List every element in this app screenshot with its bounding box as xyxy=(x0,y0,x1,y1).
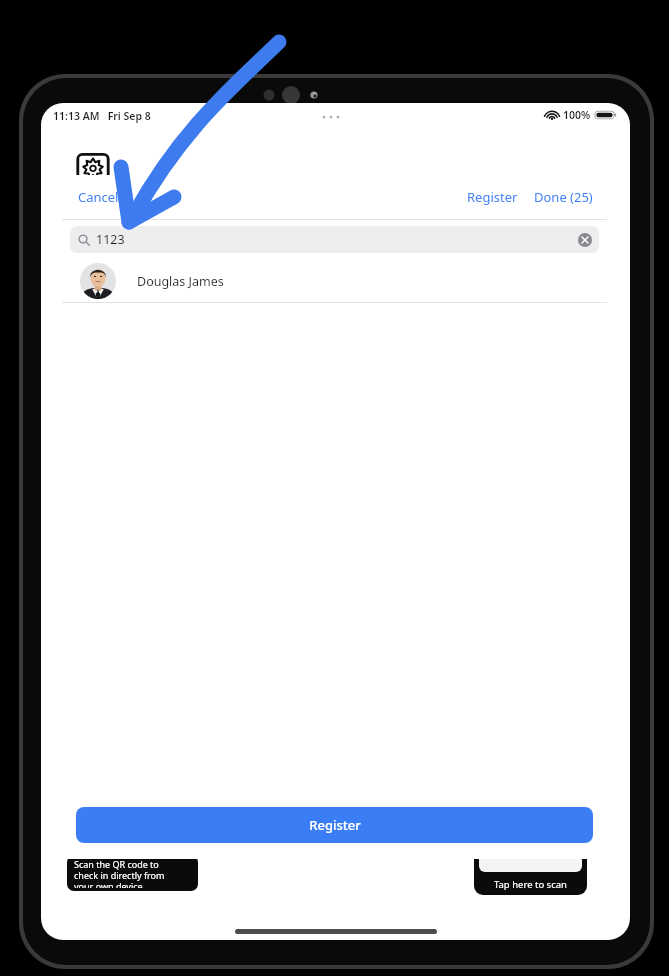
button[interactable]: Cancel xyxy=(68,182,129,212)
button[interactable]: Done (25) xyxy=(526,182,601,212)
button[interactable]: Clear search xyxy=(578,233,592,247)
staticText: Register xyxy=(467,188,518,206)
staticText: Done (25) xyxy=(534,188,593,206)
staticText: 100% xyxy=(563,108,591,122)
staticText: Tap here to scan xyxy=(494,878,567,891)
button[interactable]: Register xyxy=(459,182,526,212)
button[interactable]: Tap here to scan xyxy=(474,843,587,895)
staticText: Scan the QR code to check in directly fr… xyxy=(74,858,165,888)
staticText: Douglas James xyxy=(137,273,224,290)
button[interactable]: App logo xyxy=(74,149,112,187)
button[interactable]: 1123 xyxy=(70,226,599,253)
staticText: 11:13 AM Fri Sep 8 xyxy=(53,109,151,123)
staticText: Cancel xyxy=(78,188,119,206)
button[interactable]: Register xyxy=(76,807,593,843)
staticText: Register xyxy=(309,816,361,834)
button[interactable]: Douglas James xyxy=(62,259,607,303)
staticText: 1123 xyxy=(96,231,125,248)
